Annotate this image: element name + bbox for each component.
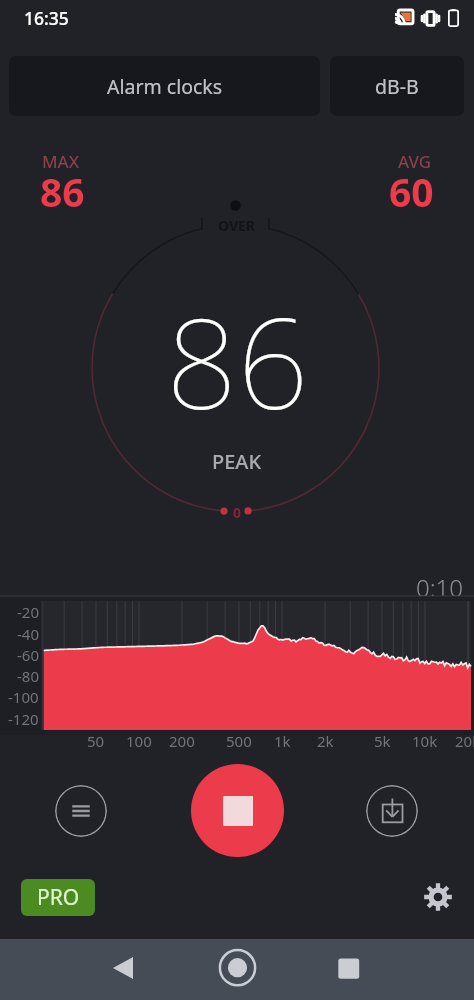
staticText: 86 — [40, 165, 85, 218]
staticText: 10k — [412, 731, 438, 751]
staticText: 86 — [166, 275, 309, 445]
button[interactable]: PRO — [21, 879, 95, 916]
staticText: 0 — [233, 503, 242, 522]
staticText: -60 — [17, 645, 39, 665]
staticText: -80 — [17, 666, 39, 686]
staticText: -100 — [8, 687, 39, 707]
staticText: 20k — [455, 731, 474, 751]
staticText: 1k — [274, 731, 291, 751]
staticText: MAX — [42, 150, 80, 173]
staticText: 50 — [87, 731, 105, 751]
staticText: 5k — [374, 731, 391, 751]
staticText: dB-B — [375, 73, 419, 100]
button[interactable]: Save recording — [366, 785, 418, 837]
button[interactable]: Home — [212, 943, 263, 994]
staticText: 2k — [317, 731, 334, 751]
button[interactable]: Back — [98, 943, 148, 993]
button[interactable]: Alarm clocks — [9, 56, 320, 116]
staticText: Alarm clocks — [107, 73, 223, 100]
staticText: AVG — [398, 150, 432, 173]
staticText: OVER — [218, 216, 256, 235]
staticText: 200 — [169, 731, 195, 751]
staticText: PRO — [37, 883, 80, 912]
staticText: 16:35 — [24, 6, 69, 30]
button[interactable]: dB-B — [330, 56, 464, 116]
button[interactable]: Settings — [418, 877, 457, 916]
button[interactable]: Recent apps — [324, 943, 374, 993]
staticText: 0:10 — [416, 571, 463, 604]
staticText: -20 — [17, 602, 39, 622]
button[interactable]: Stop recording — [191, 764, 284, 857]
staticText: 100 — [126, 731, 152, 751]
staticText: -40 — [17, 624, 39, 644]
staticText: 500 — [226, 731, 252, 751]
staticText: 60 — [389, 165, 434, 218]
staticText: PEAK — [212, 448, 262, 475]
button[interactable]: Menu — [55, 785, 107, 837]
staticText: -120 — [8, 709, 39, 729]
